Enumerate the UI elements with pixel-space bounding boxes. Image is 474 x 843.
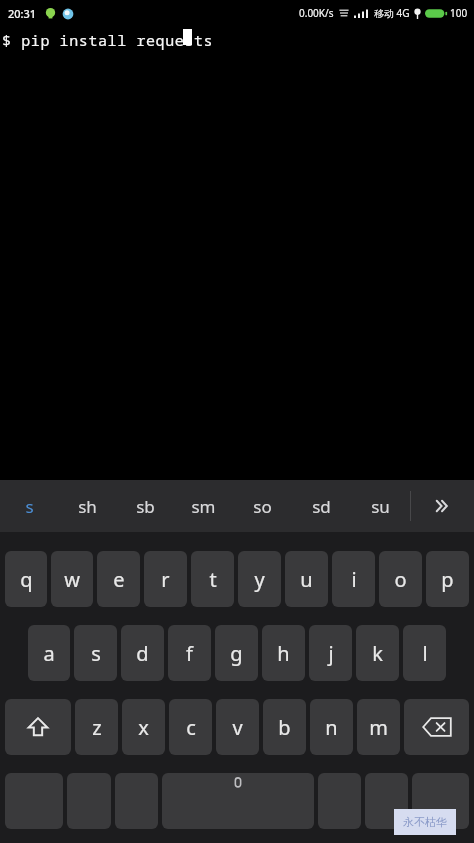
staticText: l: [422, 640, 428, 667]
staticText: 0.00K/s: [299, 6, 334, 20]
button[interactable]: y: [238, 551, 281, 607]
button[interactable]: so: [233, 480, 292, 532]
staticText: q: [20, 566, 33, 593]
staticText: r: [161, 566, 170, 593]
button[interactable]: b: [263, 699, 306, 755]
button[interactable]: t: [191, 551, 234, 607]
staticText: su: [371, 495, 390, 518]
button[interactable]: n: [310, 699, 353, 755]
staticText: x: [138, 714, 149, 741]
staticText: u: [300, 566, 313, 593]
button[interactable]: Space / Voice input: [162, 773, 314, 829]
button[interactable]: p: [426, 551, 469, 607]
button[interactable]: i: [332, 551, 375, 607]
button[interactable]: x: [122, 699, 165, 755]
staticText: so: [253, 495, 272, 518]
button[interactable]: Shift: [5, 699, 71, 755]
staticText: sh: [78, 495, 97, 518]
button[interactable]: u: [285, 551, 328, 607]
staticText: 100: [450, 6, 468, 20]
staticText: y: [254, 566, 265, 593]
staticText: g: [230, 640, 243, 667]
button[interactable]: o: [379, 551, 422, 607]
staticText: s: [91, 640, 101, 667]
staticText: n: [325, 714, 338, 741]
button[interactable]: sh: [58, 480, 116, 532]
staticText: f: [186, 640, 193, 667]
button[interactable]: Key: [318, 773, 361, 829]
staticText: j: [328, 640, 334, 667]
staticText: i: [351, 566, 357, 593]
button[interactable]: v: [216, 699, 259, 755]
staticText: d: [136, 640, 149, 667]
button[interactable]: k: [356, 625, 399, 681]
staticText: e: [113, 566, 125, 593]
button[interactable]: s: [0, 480, 58, 532]
button[interactable]: r: [144, 551, 187, 607]
button[interactable]: j: [309, 625, 352, 681]
button[interactable]: s: [74, 625, 117, 681]
button[interactable]: su: [351, 480, 410, 532]
staticText: o: [394, 566, 407, 593]
button[interactable]: More suggestions: [410, 480, 474, 532]
staticText: v: [232, 714, 243, 741]
button[interactable]: Key: [67, 773, 111, 829]
button[interactable]: Key: [115, 773, 158, 829]
button[interactable]: m: [357, 699, 400, 755]
staticText: a: [43, 640, 55, 667]
button[interactable]: l: [403, 625, 446, 681]
staticText: sb: [136, 495, 155, 518]
button[interactable]: sm: [174, 480, 233, 532]
button[interactable]: sb: [116, 480, 174, 532]
staticText: m: [369, 714, 388, 741]
staticText: t: [209, 566, 217, 593]
button[interactable]: h: [262, 625, 305, 681]
button[interactable]: Backspace: [404, 699, 469, 755]
button[interactable]: g: [215, 625, 258, 681]
button[interactable]: f: [168, 625, 211, 681]
button[interactable]: sd: [292, 480, 351, 532]
staticText: h: [277, 640, 290, 667]
staticText: z: [92, 714, 102, 741]
staticText: b: [278, 714, 291, 741]
button[interactable]: z: [75, 699, 118, 755]
button[interactable]: w: [51, 551, 93, 607]
staticText: 永不枯华: [403, 815, 447, 829]
staticText: s: [25, 495, 34, 518]
button[interactable]: Key: [365, 773, 408, 829]
button[interactable]: d: [121, 625, 164, 681]
staticText: p: [441, 566, 454, 593]
staticText: w: [64, 566, 80, 593]
button[interactable]: a: [28, 625, 70, 681]
staticText: sm: [191, 495, 216, 518]
button[interactable]: Key: [412, 773, 469, 829]
button[interactable]: q: [5, 551, 47, 607]
staticText: k: [372, 640, 383, 667]
button[interactable]: e: [97, 551, 140, 607]
staticText: sd: [312, 495, 331, 518]
button[interactable]: c: [169, 699, 212, 755]
staticText: $ pip install requests: [2, 30, 214, 50]
staticText: 移动 4G: [374, 6, 410, 20]
staticText: c: [186, 714, 196, 741]
staticText: 20:31: [8, 6, 37, 21]
